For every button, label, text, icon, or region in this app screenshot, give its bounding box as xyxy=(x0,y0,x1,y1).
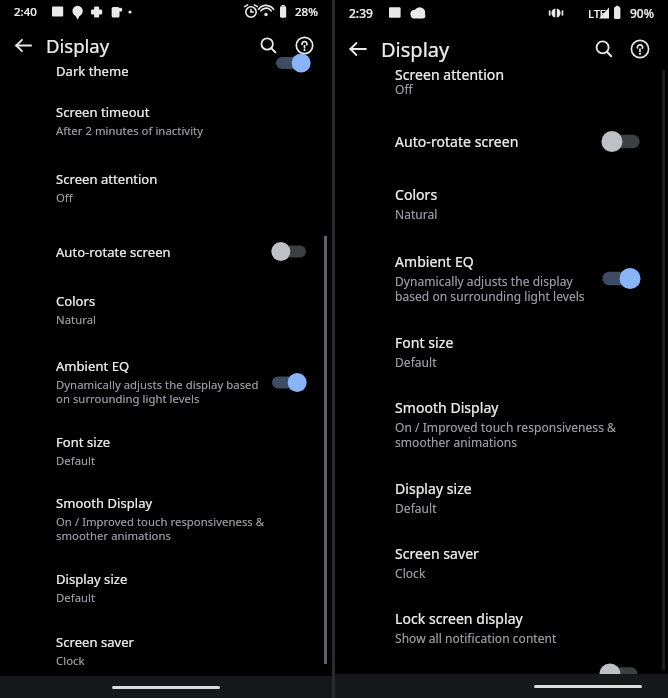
staticText: 2:39 xyxy=(349,5,373,21)
button[interactable]: Help xyxy=(622,31,658,67)
staticText: Clock xyxy=(395,565,426,581)
button[interactable]: Back xyxy=(341,32,375,66)
button[interactable]: Screen timeout xyxy=(0,103,332,138)
button[interactable]: Search xyxy=(250,27,286,63)
button[interactable] xyxy=(272,55,312,71)
button[interactable]: Ambient EQ xyxy=(0,357,332,407)
staticText: Font size xyxy=(395,333,454,352)
button[interactable]: Smooth Display xyxy=(335,398,668,451)
staticText: Screen saver xyxy=(395,544,479,563)
staticText: Screen saver xyxy=(56,633,134,651)
staticText: Display size xyxy=(395,479,472,498)
staticText: LTE xyxy=(588,6,606,21)
staticText: 2:40 xyxy=(14,4,37,20)
staticText: Display xyxy=(381,36,450,63)
staticText: On / Improved touch responsiveness & smo… xyxy=(395,419,636,451)
button[interactable]: Auto-rotate screen xyxy=(0,239,332,264)
button[interactable] xyxy=(268,370,308,395)
staticText: Dynamically adjusts the display based on… xyxy=(56,377,262,407)
staticText: Screen attention xyxy=(56,170,158,188)
staticText: Lock screen display xyxy=(395,609,523,628)
staticText: Dark theme xyxy=(56,62,129,78)
button[interactable]: Ambient EQ xyxy=(335,252,668,305)
button[interactable]: Screen saver xyxy=(0,633,332,668)
staticText: Natural xyxy=(395,206,438,222)
button[interactable]: Back xyxy=(6,28,40,62)
button[interactable]: Search xyxy=(586,31,622,67)
staticText: Font size xyxy=(56,433,111,451)
staticText: Dynamically adjusts the display based on… xyxy=(395,273,592,305)
staticText: After 2 minutes of inactivity xyxy=(56,123,204,138)
button[interactable] xyxy=(598,265,642,292)
staticText: 90% xyxy=(630,5,654,21)
button[interactable]: Screen attention xyxy=(335,72,668,100)
staticText: On / Improved touch responsiveness & smo… xyxy=(56,514,312,544)
staticText: Off xyxy=(395,81,413,97)
staticText: Show all notification content xyxy=(395,630,557,646)
staticText: Auto-rotate screen xyxy=(395,132,519,151)
button[interactable]: Font size xyxy=(0,433,332,468)
staticText: Clock xyxy=(56,653,85,668)
button[interactable] xyxy=(270,239,310,264)
button[interactable]: Display size xyxy=(0,570,332,605)
staticText: Default xyxy=(56,590,96,605)
staticText: Smooth Display xyxy=(56,494,153,512)
button[interactable]: Help xyxy=(286,27,322,63)
button[interactable]: Colors xyxy=(0,292,332,327)
staticText: Auto-rotate screen xyxy=(56,243,171,261)
staticText: Screen attention xyxy=(395,65,505,84)
staticText: Screen timeout xyxy=(56,103,150,121)
button[interactable]: Screen attention xyxy=(0,170,332,205)
staticText: Smooth Display xyxy=(395,398,499,417)
staticText: Display size xyxy=(56,570,128,588)
staticText: Ambient EQ xyxy=(395,252,474,271)
button[interactable]: Lock screen display xyxy=(335,609,668,646)
button[interactable]: Dark theme xyxy=(0,66,332,82)
staticText: Default xyxy=(395,500,437,516)
button[interactable]: Screen saver xyxy=(335,544,668,581)
staticText: Off xyxy=(56,190,73,205)
staticText: Colors xyxy=(395,185,438,204)
button[interactable]: Font size xyxy=(335,333,668,370)
button[interactable]: Smooth Display xyxy=(0,494,332,544)
staticText: Ambient EQ xyxy=(56,357,130,375)
staticText: Natural xyxy=(56,312,97,327)
staticText: 28% xyxy=(295,4,318,20)
staticText: Display xyxy=(46,33,110,58)
button[interactable] xyxy=(600,128,644,155)
button[interactable]: Auto-rotate screen xyxy=(335,128,668,155)
staticText: Colors xyxy=(56,292,96,310)
staticText: Default xyxy=(56,453,96,468)
button[interactable]: Display size xyxy=(335,479,668,516)
button[interactable]: Colors xyxy=(335,185,668,222)
staticText: Default xyxy=(395,354,437,370)
